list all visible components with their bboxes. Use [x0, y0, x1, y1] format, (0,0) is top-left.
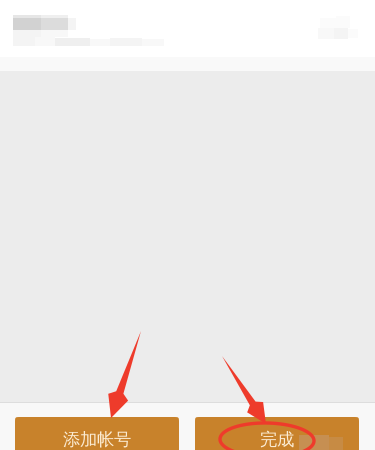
button[interactable]: Title (redacted) — [0, 0, 375, 71]
button[interactable]: Navigation item (redacted) — [0, 0, 375, 71]
button[interactable]: 完成 — [195, 417, 359, 450]
staticText: 完成 — [260, 429, 294, 450]
staticText: 添加帐号 — [63, 429, 131, 450]
button[interactable]: 添加帐号 — [15, 417, 179, 450]
